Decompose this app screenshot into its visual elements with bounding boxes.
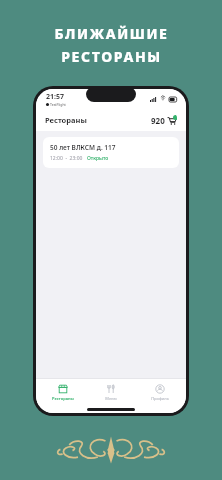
- button[interactable]: Профиль: [138, 382, 182, 403]
- staticText: БЛИЖАЙШИЕ: [54, 24, 169, 43]
- staticText: Рестораны: [52, 396, 74, 401]
- staticText: 50 лет ВЛКСМ д. 117: [50, 143, 116, 152]
- staticText: 920: [151, 115, 165, 126]
- staticText: TestFlight: [50, 102, 66, 107]
- staticText: 21:57: [46, 92, 64, 102]
- button[interactable]: Корзина, 920 бонусов: [150, 114, 177, 127]
- staticText: РЕСТОРАНЫ: [61, 47, 162, 66]
- staticText: Открыто: [87, 155, 109, 162]
- staticText: Профиль: [151, 396, 169, 401]
- button[interactable]: 50 лет ВЛКСМ д. 117: [43, 137, 179, 168]
- button[interactable]: Меню: [89, 382, 133, 403]
- staticText: Рестораны: [45, 115, 87, 125]
- button[interactable]: Рестораны: [41, 382, 85, 403]
- staticText: Меню: [105, 396, 117, 401]
- staticText: 12:00 - 23:00: [50, 155, 83, 162]
